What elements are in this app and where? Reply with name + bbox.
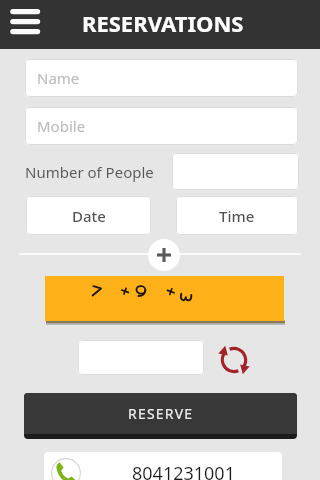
button[interactable]: Time	[176, 196, 298, 235]
staticText: Time	[219, 206, 255, 226]
staticText: Name	[37, 68, 80, 88]
button[interactable]: RESERVE	[24, 393, 297, 434]
button[interactable]: Captcha image	[45, 276, 284, 323]
button[interactable]: Open navigation menu	[4, 3, 48, 47]
button[interactable]: Mobile	[25, 107, 298, 145]
button[interactable]: Date	[26, 196, 151, 235]
button[interactable]: Refresh captcha	[219, 342, 251, 374]
button[interactable]	[78, 340, 204, 375]
staticText: Number of People	[25, 162, 154, 182]
button[interactable]: Name	[25, 59, 298, 97]
staticText: RESERVATIONS	[82, 8, 244, 38]
staticText: Date	[72, 206, 106, 226]
staticText: RESERVE	[128, 404, 194, 423]
button[interactable]: 8041231001	[44, 452, 282, 480]
staticText: Mobile	[37, 116, 86, 136]
staticText: 8041231001	[132, 461, 235, 480]
button[interactable]: Add another reservation	[148, 239, 180, 271]
button[interactable]	[172, 153, 299, 190]
